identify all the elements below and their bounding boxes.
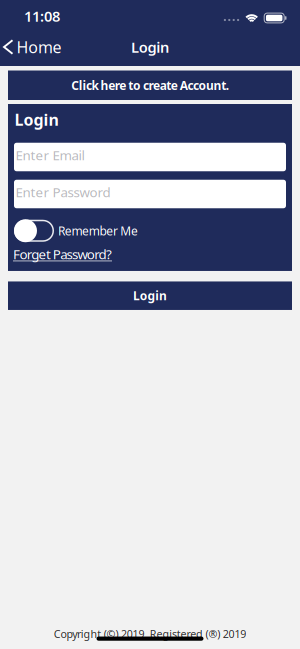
staticText: Remember Me [58, 223, 138, 239]
button[interactable]: Forget Password? [13, 245, 112, 263]
staticText: Login [14, 109, 58, 130]
button[interactable]: Enter Email [14, 143, 286, 171]
staticText: Enter Email [15, 146, 84, 164]
button[interactable]: Home [4, 36, 62, 58]
staticText: Click here to create Account. [71, 77, 229, 93]
staticText: Forget Password? [13, 245, 112, 263]
staticText: Login [133, 288, 167, 304]
button[interactable]: Click here to create Account. [8, 70, 292, 100]
staticText: 11:08 [24, 6, 60, 26]
staticText: Enter Password [15, 183, 110, 201]
button[interactable]: Enter Password [14, 180, 286, 208]
button[interactable]: Remember Me [14, 219, 138, 242]
staticText: Home [16, 36, 62, 58]
button[interactable]: Login [8, 281, 292, 310]
staticText: Copyright (©) 2019 Registered (®) 2019 [54, 627, 246, 641]
staticText: Login [131, 37, 169, 57]
